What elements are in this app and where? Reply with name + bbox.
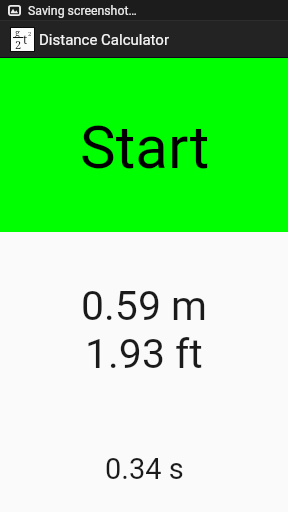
other: Screenshot saved	[8, 4, 21, 17]
staticText: Saving screenshot…	[28, 4, 137, 18]
staticText: 2	[15, 37, 22, 52]
staticText: 0.59 m	[81, 282, 208, 330]
button[interactable]: Start	[0, 58, 288, 232]
other: Distance Calculator app icon	[10, 27, 35, 52]
staticText: g	[15, 26, 20, 38]
staticText: 1.93 ft	[85, 330, 203, 378]
button[interactable]: Distance Calculator app icon	[0, 21, 288, 58]
staticText: Distance Calculator	[39, 31, 170, 49]
staticText: Start	[80, 112, 210, 182]
staticText: t	[23, 31, 28, 47]
staticText: 2	[28, 30, 32, 38]
staticText: 0.34 s	[105, 452, 184, 486]
